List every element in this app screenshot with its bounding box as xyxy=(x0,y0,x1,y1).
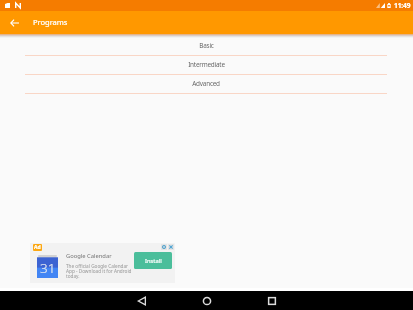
button[interactable]: Advanced xyxy=(25,75,387,94)
button[interactable]: Recents xyxy=(262,291,282,310)
button[interactable]: Intermediate xyxy=(25,56,387,75)
button[interactable]: Back xyxy=(4,11,25,34)
button[interactable]: Back xyxy=(132,291,152,310)
button[interactable]: Home xyxy=(197,291,217,310)
staticText: Programs xyxy=(33,17,68,27)
button[interactable]: Ad info xyxy=(161,244,167,250)
staticText: 11:49 xyxy=(394,1,411,10)
staticText: The official Google Calendar App - Downl… xyxy=(66,263,132,280)
staticText: Basic xyxy=(199,41,214,50)
button[interactable]: Close ad xyxy=(168,244,174,250)
staticText: 31 xyxy=(40,259,56,277)
staticText: Intermediate xyxy=(188,60,225,69)
button[interactable]: Basic xyxy=(25,37,387,56)
button[interactable]: Install xyxy=(134,252,172,269)
staticText: Google Calendar xyxy=(66,252,112,260)
staticText: Advanced xyxy=(192,79,220,88)
staticText: Ad xyxy=(34,244,41,251)
staticText: Install xyxy=(145,257,162,265)
